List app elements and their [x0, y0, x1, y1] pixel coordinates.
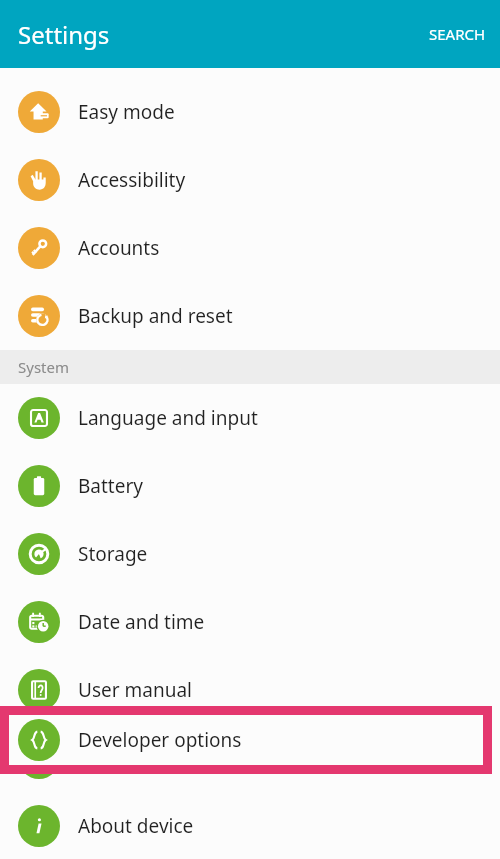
staticText: Backup and reset — [78, 303, 233, 329]
staticText: SEARCH — [429, 24, 486, 44]
button[interactable]: Backup and reset — [0, 282, 500, 350]
staticText: Easy mode — [78, 99, 175, 125]
button[interactable]: Storage — [0, 520, 500, 588]
button[interactable]: SEARCH — [415, 12, 500, 56]
button[interactable]: Accessibility — [0, 146, 500, 214]
button[interactable]: Developer options — [0, 724, 500, 792]
staticText: Developer options — [78, 727, 242, 753]
staticText: Storage — [78, 541, 148, 567]
staticText: Date and time — [78, 609, 205, 635]
button[interactable]: About device — [0, 792, 500, 859]
button[interactable]: Battery — [0, 452, 500, 520]
button[interactable]: Easy mode — [0, 78, 500, 146]
button[interactable]: User manual — [0, 656, 500, 724]
button[interactable]: Language and input — [0, 384, 500, 452]
button[interactable]: Accounts — [0, 214, 500, 282]
staticText: Settings — [18, 18, 110, 51]
button[interactable]: Date and time — [0, 588, 500, 656]
staticText: Language and input — [78, 405, 258, 431]
staticText: Developer options — [78, 745, 242, 771]
button[interactable]: Developer options — [0, 706, 500, 774]
staticText: Accessibility — [78, 167, 186, 193]
staticText: Battery — [78, 473, 143, 499]
staticText: System — [18, 357, 69, 377]
staticText: About device — [78, 813, 194, 839]
staticText: Accounts — [78, 235, 160, 261]
staticText: User manual — [78, 677, 192, 703]
